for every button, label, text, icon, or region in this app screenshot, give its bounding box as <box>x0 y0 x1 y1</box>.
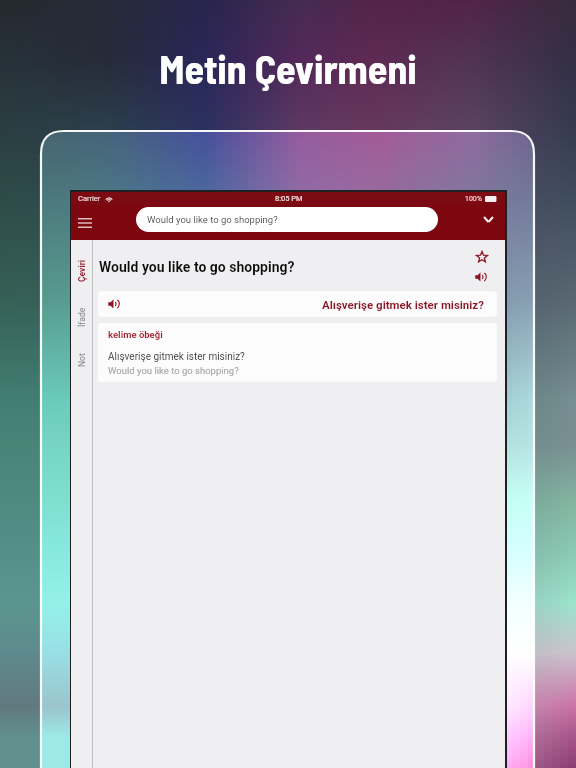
staticText: Would you like to go shopping? <box>99 259 295 275</box>
staticText: Carrier <box>78 194 101 203</box>
staticText: Would you like to go shopping? <box>108 365 239 376</box>
button[interactable]: Favorite <box>476 251 488 263</box>
other: Speak translation <box>108 299 121 309</box>
button[interactable]: Would you like to go shopping? <box>136 207 438 232</box>
staticText: 8:05 PM <box>275 194 303 203</box>
staticText: İfade <box>77 307 87 327</box>
staticText: Çeviri <box>77 260 87 282</box>
button[interactable]: Çeviri <box>71 248 93 294</box>
staticText: kelime öbeği <box>108 329 163 340</box>
button[interactable]: Collapse <box>471 207 505 232</box>
button[interactable]: Not <box>71 340 93 380</box>
button[interactable]: Speak translation <box>98 291 497 317</box>
staticText: 100% <box>465 195 482 203</box>
button[interactable]: Speak <box>475 272 488 282</box>
staticText: Alışverişe gitmek ister misiniz? <box>322 298 484 311</box>
staticText: Metin Çevirmeni <box>159 44 417 92</box>
staticText: Alışverişe gitmek ister misiniz? <box>108 351 245 363</box>
staticText: Would you like to go shopping? <box>147 214 278 225</box>
staticText: Not <box>77 353 87 367</box>
button[interactable]: İfade <box>71 294 93 340</box>
button[interactable]: Menu <box>73 208 97 237</box>
button[interactable]: kelime öbeği <box>98 323 497 382</box>
